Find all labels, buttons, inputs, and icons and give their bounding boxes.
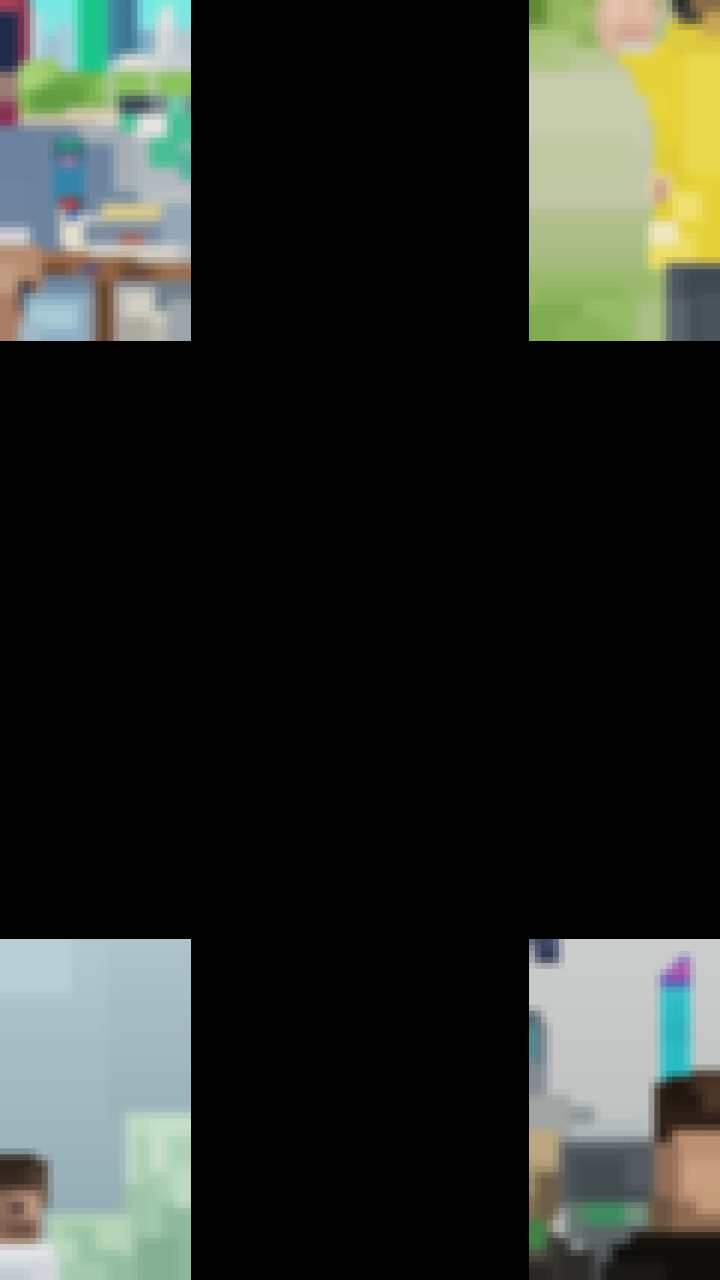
button[interactable]: Video thumbnail, portrait against the sk… xyxy=(0,939,191,1280)
button[interactable]: Video thumbnail, city street xyxy=(0,0,191,341)
button[interactable]: Video thumbnail, yellow shirt in a field xyxy=(529,0,720,341)
button[interactable]: Video thumbnail, station platform xyxy=(529,939,720,1280)
